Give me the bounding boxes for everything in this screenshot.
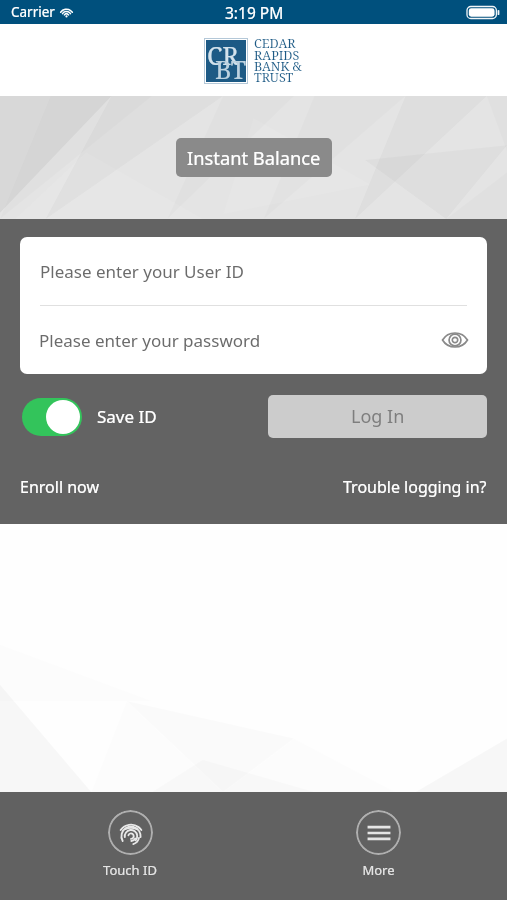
staticText: 3:19 PM [225, 2, 284, 23]
staticText: Carrier [11, 3, 55, 21]
staticText: Trouble logging in? [343, 476, 487, 498]
staticText: CEDAR RAPIDS BANK & TRUST [254, 35, 302, 86]
staticText: Save ID [97, 405, 157, 428]
staticText: Enroll now [20, 476, 99, 498]
staticText: Touch ID [103, 861, 157, 879]
staticText: BT [215, 52, 247, 86]
button[interactable]: Trouble logging in? [335, 468, 495, 506]
button[interactable]: Touch ID login [75, 792, 185, 900]
staticText: More [362, 861, 395, 879]
button[interactable]: Please enter your User ID [20, 237, 487, 305]
staticText: Please enter your password [39, 329, 261, 352]
staticText: Instant Balance [187, 145, 321, 170]
button[interactable]: Please enter your password [20, 306, 487, 374]
button[interactable]: Instant Balance [176, 138, 332, 177]
staticText: Please enter your User ID [40, 260, 244, 283]
other: More options [356, 810, 401, 855]
other: Touch ID login [108, 810, 153, 855]
button[interactable]: Enroll now [12, 468, 107, 506]
button[interactable] [22, 398, 82, 436]
staticText: CR [207, 38, 239, 72]
button[interactable]: Show password [436, 321, 474, 359]
button[interactable]: More options [323, 792, 433, 900]
button[interactable]: Log In [268, 395, 487, 438]
staticText: Log In [351, 404, 405, 429]
